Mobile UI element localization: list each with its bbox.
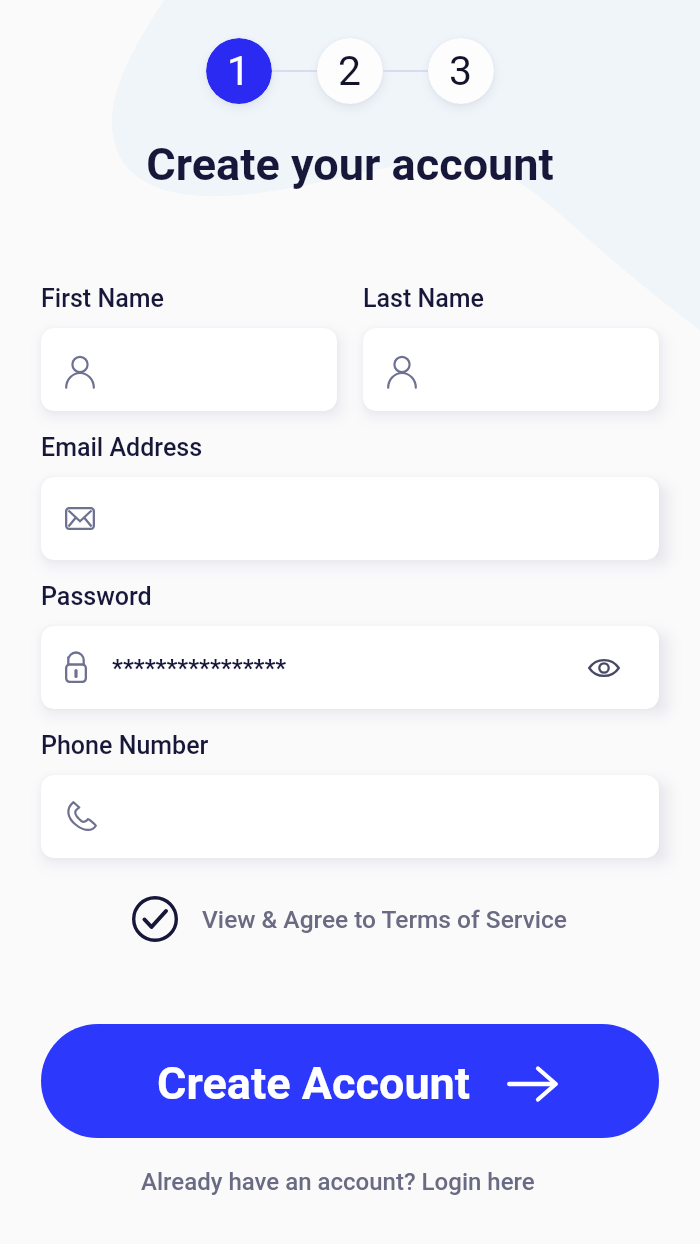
button[interactable]: Already have an account? Login here bbox=[141, 1168, 535, 1196]
button[interactable]: Step 2 bbox=[317, 38, 383, 104]
staticText: View & Agree to Terms of Service bbox=[202, 905, 568, 934]
button[interactable]: Show password bbox=[573, 650, 635, 686]
staticText: Create your account bbox=[0, 138, 700, 191]
staticText: Email Address bbox=[41, 433, 203, 462]
button[interactable]: First Name bbox=[41, 328, 337, 411]
staticText: First Name bbox=[41, 284, 164, 313]
staticText: Create Account bbox=[157, 1057, 471, 1110]
staticText: Phone Number bbox=[41, 731, 209, 760]
staticText: Password bbox=[41, 582, 152, 611]
staticText: **************** bbox=[112, 654, 287, 682]
button[interactable]: Password bbox=[41, 626, 659, 709]
staticText: Last Name bbox=[363, 284, 485, 313]
staticText: 3 bbox=[449, 47, 473, 95]
button[interactable]: Step 3 bbox=[428, 38, 494, 104]
button[interactable]: Step 1 bbox=[206, 38, 272, 104]
button[interactable]: Create Account bbox=[41, 1024, 659, 1138]
button[interactable]: Phone Number bbox=[41, 775, 659, 858]
staticText: 1 bbox=[227, 47, 251, 95]
button[interactable]: Email Address bbox=[41, 477, 659, 560]
staticText: 2 bbox=[338, 47, 362, 95]
button[interactable]: View & Agree to Terms of Service bbox=[132, 892, 568, 946]
button[interactable]: Last Name bbox=[363, 328, 659, 411]
